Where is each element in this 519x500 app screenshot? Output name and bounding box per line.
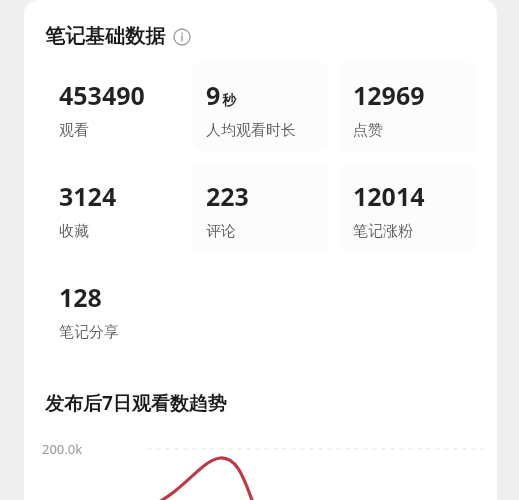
button[interactable]: 3124 (45, 163, 182, 253)
staticText: 秒 (222, 92, 236, 110)
staticText: 笔记基础数据 (45, 24, 165, 49)
staticText: 453490 (59, 78, 145, 112)
button[interactable]: 223 (192, 163, 329, 253)
staticText: 128 (59, 280, 102, 314)
staticText: 人均观看时长 (206, 121, 296, 140)
staticText: 发布后7日观看数趋势 (45, 390, 227, 416)
button[interactable]: 12014 (339, 163, 476, 253)
button[interactable]: 128 (45, 264, 182, 354)
staticText: 评论 (206, 222, 236, 241)
staticText: 笔记涨粉 (353, 222, 413, 241)
staticText: 收藏 (59, 222, 89, 241)
button[interactable]: 453490 (45, 62, 182, 152)
staticText: 笔记分享 (59, 323, 119, 342)
staticText: 200.0k (42, 440, 83, 458)
staticText: 观看 (59, 121, 89, 140)
staticText: 223 (206, 179, 249, 213)
staticText: 9 (206, 78, 221, 112)
button[interactable]: 12969 (339, 62, 476, 152)
button[interactable]: 9 (192, 62, 329, 152)
staticText: 3124 (59, 179, 117, 213)
button[interactable]: 说明 (173, 28, 191, 46)
staticText: 12014 (353, 179, 425, 213)
staticText: 点赞 (353, 121, 383, 140)
staticText: 12969 (353, 78, 425, 112)
button[interactable]: 笔记基础数据 (45, 24, 191, 49)
